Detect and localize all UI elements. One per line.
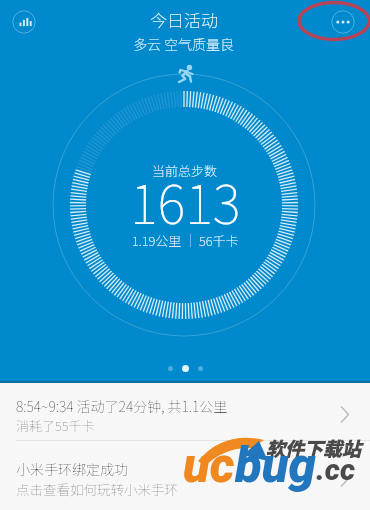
staticText: uc [183,437,235,494]
staticText: 1.19公里 [132,231,182,250]
staticText: 软件下载站 [266,434,362,462]
staticText: .cc [316,452,356,487]
staticText: bug [235,437,316,494]
staticText: 点击查看如何玩转小米手环 [16,479,178,499]
button[interactable]: 小米手环绑定成功 [0,441,370,510]
staticText: 当前总步数 [152,161,218,180]
staticText: 多云 空气质量良 [133,34,235,54]
button[interactable]: More options [331,10,355,34]
staticText: 8:54~9:34 活动了24分钟, 共1.1公里 [16,396,228,416]
staticText: 1613 [130,163,241,240]
staticText: 消耗了55千卡 [16,416,95,435]
staticText: 小米手环绑定成功 [16,459,128,479]
staticText: 今日活动 [150,7,218,32]
staticText: 56千卡 [199,231,239,250]
button[interactable]: Statistics [12,10,36,34]
button[interactable]: 8:54~9:34 活动了24分钟, 共1.1公里 [0,383,370,440]
